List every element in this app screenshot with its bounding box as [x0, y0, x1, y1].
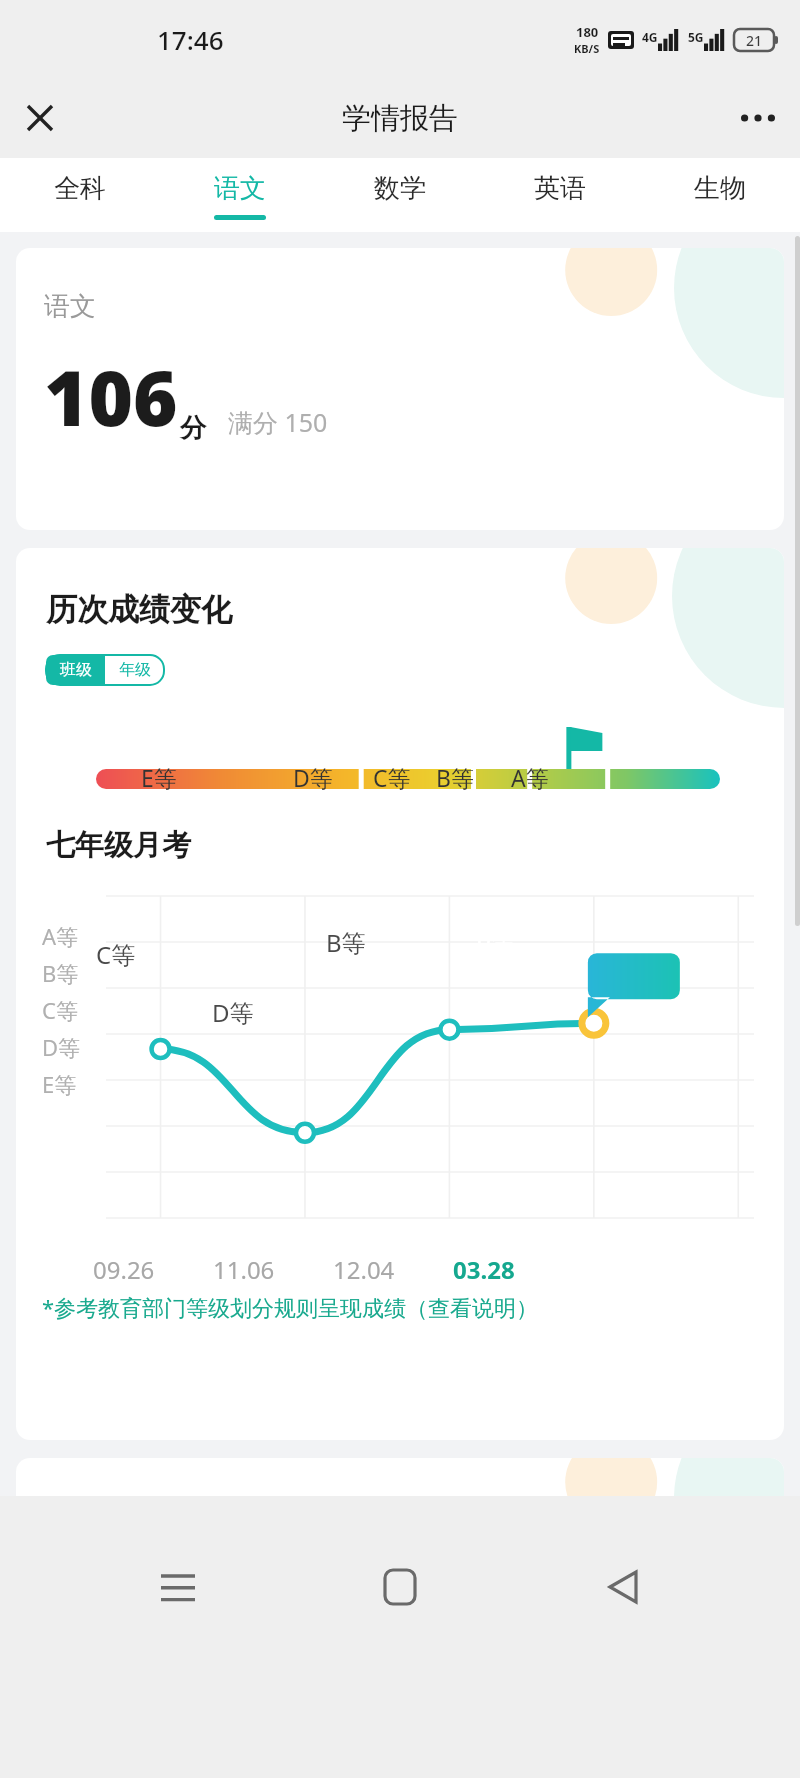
staticText: 分	[180, 412, 206, 445]
button[interactable]: 全科	[0, 158, 160, 232]
staticText: 数学	[374, 172, 426, 205]
staticText: 全科	[54, 172, 106, 205]
button[interactable]: 生物	[640, 158, 800, 232]
staticText: 年级	[119, 660, 151, 680]
staticText: C等	[96, 938, 136, 971]
staticText: D等	[42, 1032, 81, 1062]
button[interactable]: 数学	[320, 158, 480, 232]
staticText: 生物	[694, 172, 746, 205]
button[interactable]: 年级	[105, 655, 164, 685]
staticText: 语文	[214, 172, 266, 205]
staticText: D等	[212, 996, 254, 1029]
button[interactable]: 语文	[160, 158, 320, 232]
staticText: A等	[42, 921, 79, 951]
button[interactable]: 语文	[16, 248, 784, 530]
staticText: 班级	[60, 660, 92, 680]
staticText: 17:46	[157, 22, 224, 57]
staticText: KB/S	[574, 41, 600, 56]
staticText: 11.06	[213, 1253, 275, 1286]
button[interactable]: Close	[12, 90, 68, 146]
staticText: B等	[436, 762, 474, 793]
staticText: D等	[293, 762, 333, 793]
staticText: 180	[576, 23, 599, 41]
staticText: C等	[373, 762, 411, 793]
staticText: 七年级月考	[46, 827, 191, 864]
button[interactable]: Back	[578, 1542, 668, 1632]
staticText: C等	[42, 995, 78, 1025]
staticText: B等	[326, 926, 366, 959]
staticText: 09.26	[93, 1253, 155, 1286]
button[interactable]: Home	[355, 1542, 445, 1632]
staticText: 5G	[688, 29, 704, 45]
button[interactable]: More options	[730, 90, 786, 146]
staticText: 语文	[44, 290, 96, 323]
staticText: 21	[746, 31, 763, 50]
button[interactable]: 英语	[480, 158, 640, 232]
button[interactable]: 班级	[46, 655, 105, 685]
staticText: 03.28	[453, 1253, 515, 1286]
staticText: E等	[141, 762, 177, 793]
staticText: *参考教育部门等级划分规则呈现成绩（查看说明）	[42, 1292, 539, 1322]
button[interactable]: Recent apps	[133, 1542, 223, 1632]
staticText: B等	[42, 958, 79, 988]
staticText: 106	[44, 345, 178, 449]
button[interactable]: *参考教育部门等级划分规则呈现成绩（查看说明）	[42, 1292, 539, 1322]
staticText: 4G	[642, 29, 658, 45]
button[interactable]	[16, 1458, 784, 1496]
staticText: 满分 150	[228, 405, 328, 439]
staticText: 学情报告	[342, 100, 458, 137]
staticText: A等	[511, 762, 549, 793]
staticText: 12.04	[333, 1253, 395, 1286]
staticText: 英语	[534, 172, 586, 205]
staticText: 历次成绩变化	[46, 590, 232, 629]
staticText: E等	[42, 1069, 77, 1099]
